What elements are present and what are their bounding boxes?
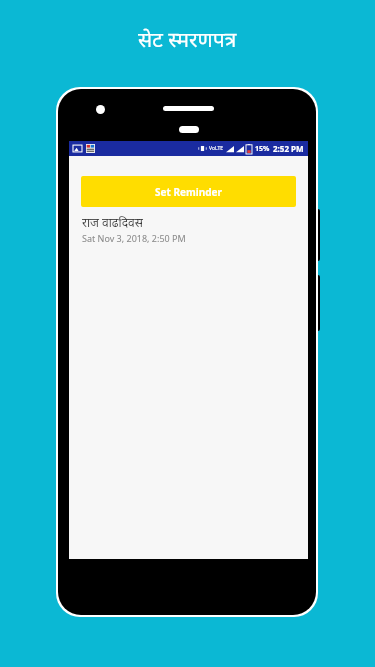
staticText: VoLTE — [209, 145, 224, 152]
button[interactable]: Set Reminder — [81, 176, 296, 207]
staticText: Set Reminder — [155, 185, 222, 199]
staticText: सेट स्मरणपत्र — [138, 25, 237, 54]
staticText: 15% — [255, 144, 270, 154]
button[interactable]: राज वाढदिवस — [69, 212, 308, 250]
staticText: Sat Nov 3, 2018, 2:50 PM — [82, 232, 186, 244]
staticText: 2:52 PM — [273, 143, 304, 154]
staticText: राज वाढदिवस — [82, 214, 143, 230]
